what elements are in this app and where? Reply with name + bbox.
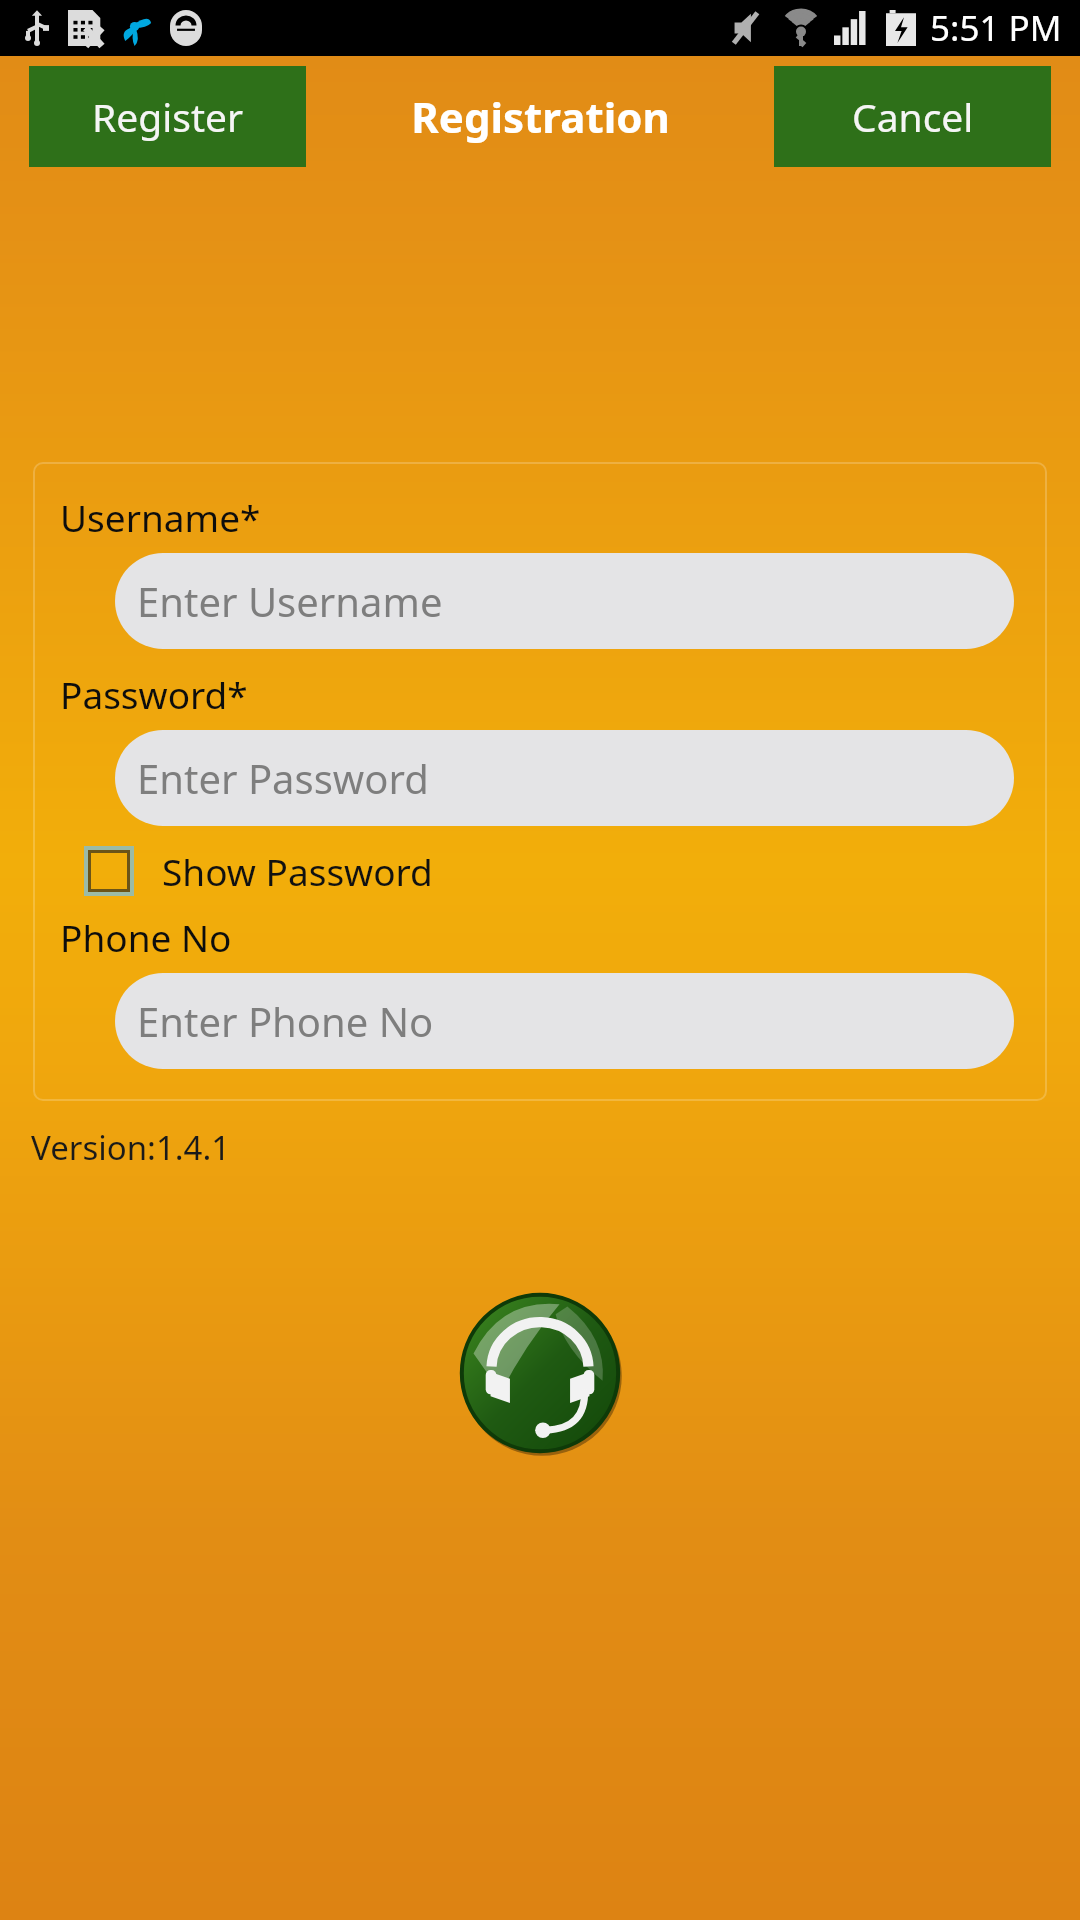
button[interactable]: Enter Password: [115, 730, 1014, 826]
staticText: Username*: [60, 492, 261, 542]
button[interactable]: Enter Username: [115, 553, 1014, 649]
staticText: Register: [92, 90, 244, 143]
button[interactable]: Cancel: [774, 66, 1051, 167]
staticText: Show Password: [162, 846, 433, 896]
staticText: Enter Phone No: [137, 994, 434, 1048]
staticText: Version:1.4.1: [31, 1125, 231, 1170]
staticText: 5:51 PM: [930, 4, 1062, 52]
staticText: Registration: [411, 88, 670, 145]
button[interactable]: Customer support: [455, 1288, 625, 1458]
button[interactable]: Enter Phone No: [115, 973, 1014, 1069]
staticText: Enter Password: [137, 751, 429, 805]
button[interactable]: Show Password: [60, 842, 441, 900]
staticText: Enter Username: [137, 574, 443, 628]
button[interactable]: Register: [29, 66, 306, 167]
staticText: Cancel: [852, 90, 974, 143]
staticText: Phone No: [60, 912, 232, 962]
staticText: Password*: [60, 669, 248, 719]
